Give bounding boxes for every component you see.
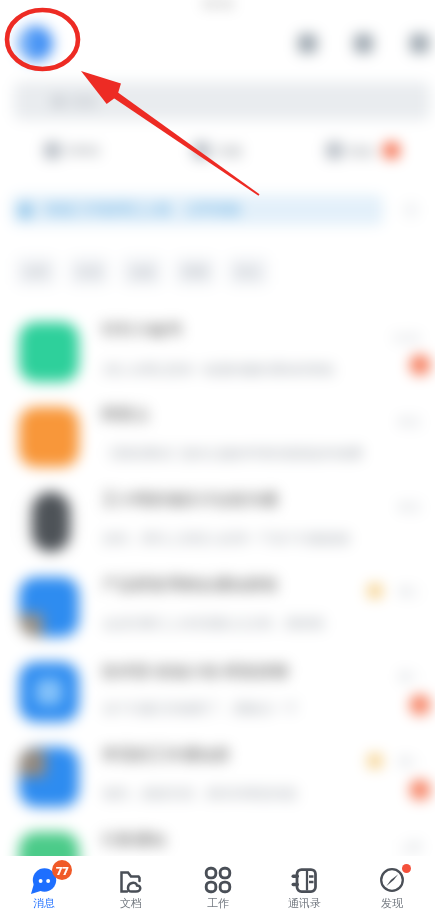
button[interactable]: @我 [122,257,162,286]
button[interactable]: Search [289,25,325,61]
staticText: 技术部-前端小组-研发群聊 [102,660,289,682]
staticText: 阿里云 [102,405,150,425]
staticText: 收到，谢谢支持，稍后回复您消息 [103,785,298,801]
staticText: 文档 [120,896,142,910]
button[interactable]: 未读 [69,257,109,286]
staticText: [有人@我] 您有一条新的服务通知待查收 [103,360,335,378]
staticText: 消息 [33,896,55,910]
button[interactable]: 王小明的项目讨论组沟通 [0,479,435,564]
staticText: DING [67,141,101,159]
button[interactable]: 智能工作助理已上线 [12,195,383,225]
staticText: 请大家及时提交本月报销单据 [103,870,272,886]
staticText: 会议纪要已上传至团队云文档，请查阅 [103,615,324,631]
button[interactable]: 群聊 [175,257,215,286]
staticText: 李雷的工作通知群 [102,745,230,765]
button[interactable]: 钉钉小秘书 [0,309,435,394]
button[interactable]: 77 [0,856,87,912]
button[interactable]: 文档 [87,856,174,912]
staticText: 发现 [381,896,403,910]
staticText: 【系统通知】您的云服务即将到期请及时续费 [103,445,363,461]
button[interactable]: 工作 [174,856,261,912]
staticText: 2 [417,783,424,798]
staticText: 3 [417,698,424,713]
button[interactable]: 行政通知 [0,819,435,904]
button[interactable]: 通讯录 [261,856,348,912]
staticText: 工作 [207,896,229,910]
staticText: 好的，我马上安排人处理一下这个问题谢谢 [103,530,350,546]
staticText: 产品研发周例会通知群组 [102,575,278,595]
staticText: 通讯录 [288,896,321,910]
button[interactable]: 日程 [145,142,290,159]
button[interactable]: 李雷的工作通知群 [0,734,435,819]
button[interactable]: Profile [18,26,53,61]
staticText: 立即体验 [185,201,241,219]
staticText: 待办 [349,143,375,159]
button[interactable]: DING [0,141,145,159]
staticText: 行政通知 [102,830,166,850]
button[interactable]: More [401,25,435,61]
button[interactable]: 待办 [228,257,268,286]
staticText: 王小明的项目讨论组沟通 [102,490,278,510]
button[interactable]: 产品研发周例会通知群组 [0,564,435,649]
staticText: 1 [417,358,424,373]
staticText: 智能工作助理已上线 [45,201,171,219]
button[interactable]: 阿里云 [0,394,435,479]
button[interactable]: 技术部-前端小组-研发群聊 [0,649,435,734]
staticText: 钉钉小秘书 [102,320,182,340]
button[interactable]: 搜索 [14,82,430,120]
button[interactable]: Add [345,25,381,61]
staticText: 日程 [216,143,242,159]
staticText: 这个问题已经修复了，请验证一下 [103,700,298,716]
button[interactable]: 待办 [290,142,435,159]
button[interactable]: 发现 [348,856,435,912]
staticText: 77 [56,863,69,878]
button[interactable]: 全部 [16,257,56,286]
